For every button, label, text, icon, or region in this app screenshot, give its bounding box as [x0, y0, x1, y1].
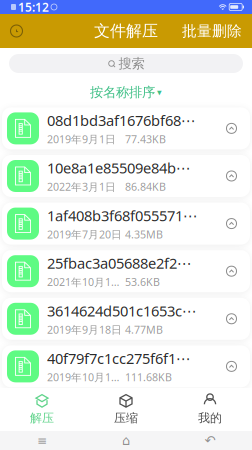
- staticText: 86.84KB: [125, 180, 166, 194]
- staticText: 2019年10月16日: [47, 370, 125, 384]
- staticText: 搜索: [118, 55, 144, 72]
- button[interactable]: 我的: [168, 388, 252, 431]
- staticText: 4.77MB: [125, 322, 163, 337]
- staticText: 08d1bd3af1676bf68⋯: [47, 111, 196, 130]
- staticText: 40f79f7c1cc275f6f1⋯: [47, 349, 191, 368]
- staticText: 批量删除: [182, 22, 242, 40]
- staticText: 15:12: [18, 0, 49, 15]
- button[interactable]: 08d1bd3af1676bf68⋯: [2, 107, 250, 149]
- staticText: 文件解压: [94, 21, 158, 41]
- staticText: 我的: [198, 411, 222, 425]
- staticText: 77.43KB: [125, 132, 166, 146]
- button[interactable]: 按名称排序: [90, 84, 162, 100]
- staticText: 4.35MB: [125, 227, 163, 241]
- staticText: 2019年9月1日: [47, 132, 116, 146]
- staticText: 2019年9月18日: [47, 322, 122, 337]
- staticText: 2019年7月20日: [47, 227, 122, 241]
- button[interactable]: 解压: [0, 388, 84, 431]
- staticText: ▾: [157, 87, 162, 97]
- staticText: 53.6KB: [125, 275, 160, 289]
- staticText: 2021年10月19日: [47, 275, 125, 289]
- button[interactable]: Home: [84, 431, 168, 450]
- button[interactable]: 批量删除: [182, 22, 242, 40]
- button[interactable]: 3614624d501c1653c⋯: [2, 298, 250, 340]
- staticText: 2022年3月1日: [47, 180, 116, 194]
- button[interactable]: 1af408b3f68f055571⋯: [2, 203, 250, 245]
- staticText: 解压: [30, 411, 54, 425]
- staticText: 111.68KB: [125, 370, 172, 384]
- button[interactable]: History: [10, 24, 23, 37]
- staticText: ≡: [37, 434, 47, 447]
- button[interactable]: 25fbac3a05688e2f2⋯: [2, 250, 250, 292]
- staticText: ⌂: [122, 433, 130, 448]
- staticText: 按名称排序: [90, 84, 155, 100]
- staticText: ↶: [204, 433, 215, 448]
- button[interactable]: 10e8a1e85509e84b⋯: [2, 155, 250, 197]
- staticText: 10e8a1e85509e84b⋯: [47, 158, 191, 178]
- button[interactable]: Back: [168, 431, 252, 450]
- staticText: 25fbac3a05688e2f2⋯: [47, 253, 192, 273]
- button[interactable]: 压缩: [84, 388, 168, 431]
- staticText: 1af408b3f68f055571⋯: [47, 206, 198, 225]
- staticText: 压缩: [114, 411, 138, 425]
- button[interactable]: Recents: [0, 431, 84, 450]
- button[interactable]: 40f79f7c1cc275f6f1⋯: [2, 345, 250, 387]
- staticText: 3614624d501c1653c⋯: [47, 301, 197, 320]
